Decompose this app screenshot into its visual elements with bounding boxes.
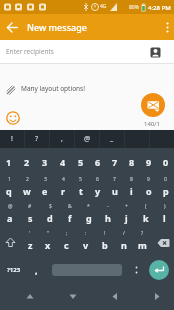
- button[interactable]: [141, 93, 165, 117]
- staticText: u: [112, 185, 118, 197]
- staticText: f: [68, 212, 72, 224]
- button[interactable]: [160, 17, 174, 37]
- staticText: #: [28, 203, 32, 210]
- staticText: 0: [164, 176, 167, 183]
- button[interactable]: 6: [89, 175, 106, 202]
- staticText: ': [29, 230, 31, 237]
- staticText: ,: [35, 264, 38, 276]
- button[interactable]: 5: [72, 175, 89, 202]
- button[interactable]: 1: [0, 148, 18, 175]
- staticText: p: [163, 185, 169, 197]
- button[interactable]: 9: [140, 148, 157, 175]
- button[interactable]: !: [0, 130, 24, 148]
- button[interactable]: ?: [133, 229, 152, 256]
- button[interactable]: &: [60, 202, 79, 229]
- button[interactable]: @: [75, 130, 99, 148]
- button[interactable]: [152, 229, 174, 256]
- staticText: 8: [129, 156, 135, 168]
- staticText: k: [143, 212, 149, 224]
- button[interactable]: 8: [123, 175, 140, 202]
- button[interactable]: 2: [18, 175, 36, 202]
- staticText: ,: [61, 134, 63, 144]
- button[interactable]: ): [155, 202, 174, 229]
- button[interactable]: #: [20, 202, 40, 229]
- staticText: w: [23, 185, 31, 197]
- staticText: z: [28, 239, 33, 251]
- staticText: 4: [60, 156, 66, 168]
- staticText: 4: [62, 176, 65, 183]
- button[interactable]: 7: [106, 148, 123, 175]
- button[interactable]: +: [117, 202, 136, 229]
- button[interactable]: (: [136, 202, 155, 229]
- staticText: j: [125, 212, 128, 224]
- button[interactable]: [5, 110, 21, 126]
- staticText: 3: [44, 176, 47, 183]
- staticText: 1: [8, 176, 11, 183]
- button[interactable]: -: [98, 202, 117, 229]
- staticText: !: [104, 230, 106, 237]
- button[interactable]: [149, 46, 161, 58]
- button[interactable]: [0, 229, 21, 256]
- staticText: +: [125, 203, 128, 210]
- button[interactable]: 9: [140, 175, 157, 202]
- staticText: 80%: [129, 4, 139, 11]
- button[interactable]: *: [79, 202, 98, 229]
- button[interactable]: /: [114, 229, 133, 256]
- staticText: e: [42, 185, 48, 197]
- button[interactable]: 1: [0, 175, 18, 202]
- staticText: 9: [147, 176, 150, 183]
- button[interactable]: 4: [54, 175, 72, 202]
- button[interactable]: :: [76, 229, 95, 256]
- button[interactable]: 4: [54, 148, 72, 175]
- button[interactable]: 3: [36, 175, 54, 202]
- button[interactable]: ,: [27, 256, 45, 283]
- staticText: Enter recipients: [6, 47, 54, 56]
- button[interactable]: 6: [89, 148, 106, 175]
- button[interactable]: 3: [36, 148, 54, 175]
- button[interactable]: ?: [25, 130, 49, 148]
- button[interactable]: 2: [18, 148, 36, 175]
- staticText: New message: [27, 21, 87, 33]
- staticText: c: [64, 239, 69, 251]
- button[interactable]: [144, 256, 174, 283]
- staticText: m: [138, 239, 147, 251]
- button[interactable]: Enter recipients: [0, 40, 174, 63]
- button[interactable]: ;: [57, 229, 76, 256]
- staticText: 4G: [100, 3, 107, 10]
- staticText: 7: [112, 156, 118, 168]
- staticText: 4:28 PM: [148, 4, 171, 12]
- staticText: ): [164, 203, 166, 210]
- staticText: b: [102, 239, 108, 251]
- button[interactable]: ": [39, 229, 57, 256]
- button[interactable]: 0: [157, 148, 174, 175]
- button[interactable]: ,: [50, 130, 74, 148]
- staticText: 6: [96, 176, 99, 183]
- button[interactable]: [2, 17, 22, 37]
- staticText: ": [47, 230, 50, 237]
- button[interactable]: ': [21, 229, 39, 256]
- staticText: r: [61, 185, 66, 197]
- button[interactable]: 8: [123, 148, 140, 175]
- staticText: q: [6, 185, 12, 197]
- button[interactable]: 0: [157, 175, 174, 202]
- button[interactable]: ?123: [0, 256, 27, 283]
- button[interactable]: !: [95, 229, 114, 256]
- button[interactable]: [129, 256, 144, 283]
- button[interactable]: [45, 256, 129, 283]
- button[interactable]: _: [100, 130, 124, 148]
- staticText: 2: [24, 156, 30, 168]
- staticText: 8: [130, 176, 133, 183]
- staticText: a: [7, 212, 13, 224]
- staticText: /: [123, 230, 125, 237]
- staticText: v: [83, 239, 89, 251]
- staticText: :: [85, 230, 87, 237]
- staticText: ?: [35, 134, 39, 144]
- button[interactable]: @: [0, 202, 20, 229]
- button[interactable]: 7: [106, 175, 123, 202]
- staticText: Many layout options!: [21, 84, 85, 93]
- button[interactable]: 5: [72, 148, 89, 175]
- staticText: t: [79, 185, 83, 197]
- button[interactable]: $: [40, 202, 60, 229]
